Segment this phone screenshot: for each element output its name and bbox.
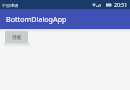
staticText: BottomDialogApp (6, 14, 67, 24)
staticText: 弹窗 (12, 34, 22, 40)
button[interactable]: 弹窗 (5, 31, 28, 43)
staticText: 中国移动 (2, 3, 18, 8)
staticText: 20:51 (114, 1, 128, 8)
